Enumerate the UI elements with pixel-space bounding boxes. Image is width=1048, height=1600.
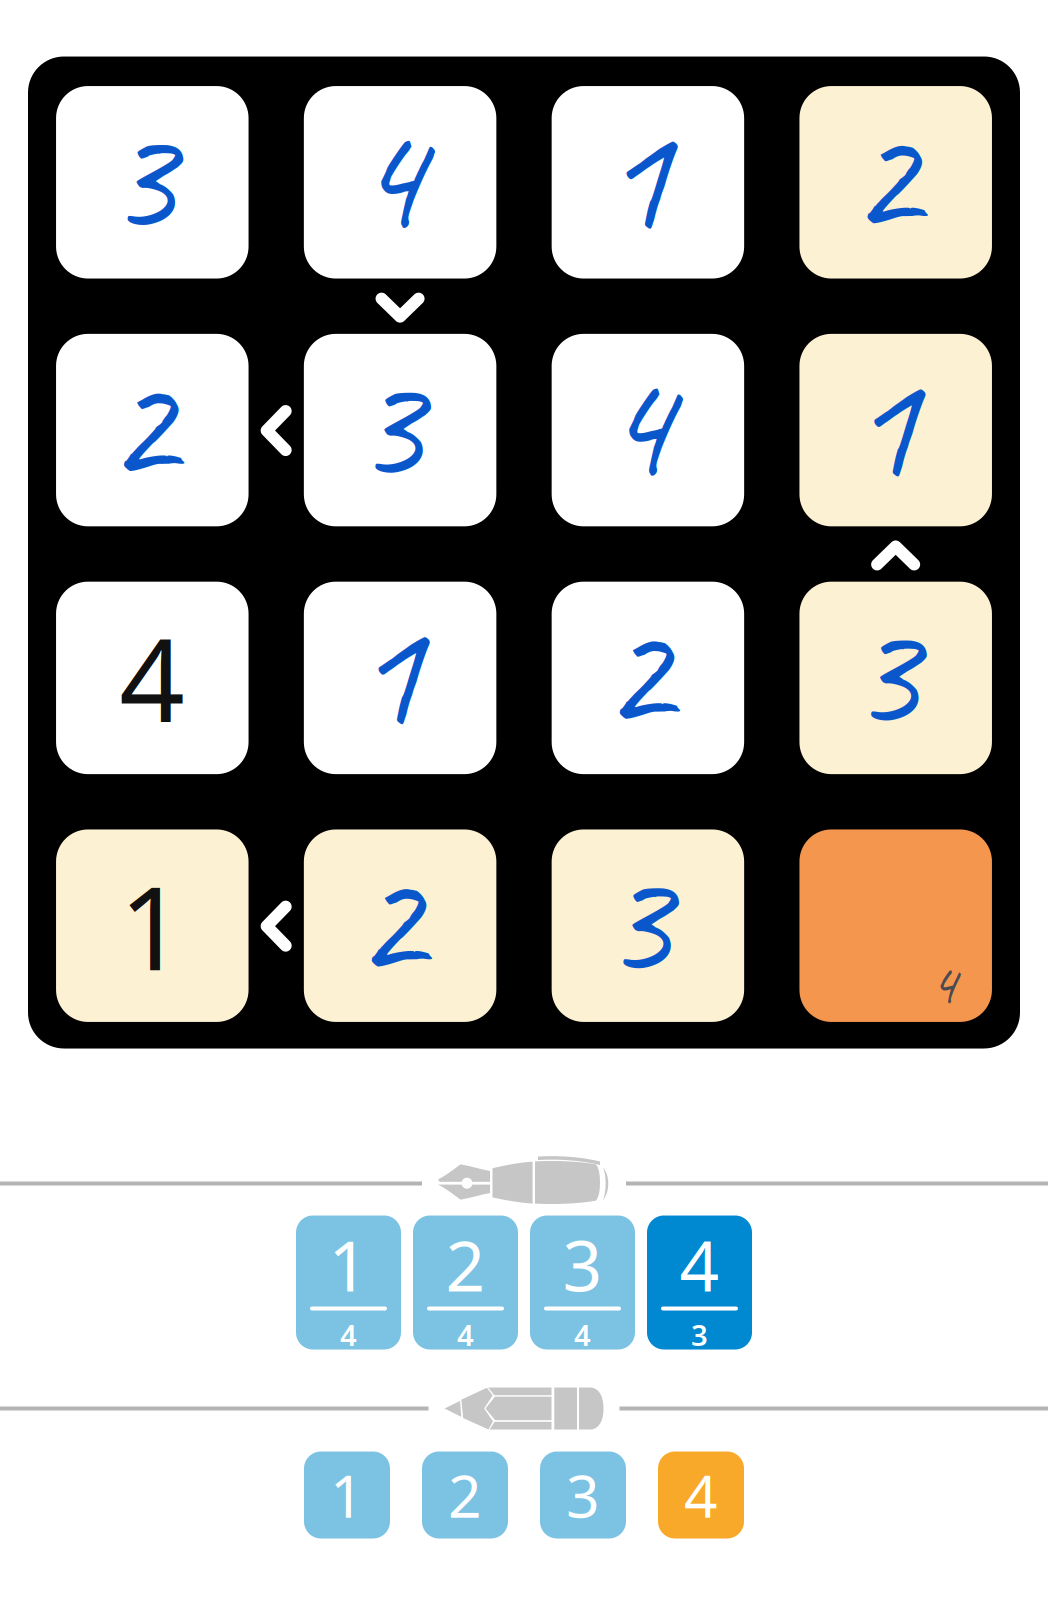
button[interactable]: 2	[304, 829, 496, 1022]
staticText: 2	[445, 1218, 485, 1311]
staticText: 3	[566, 1456, 600, 1534]
staticText: 1	[119, 850, 185, 1002]
staticText: 4	[679, 1218, 719, 1311]
button[interactable]: 1	[304, 582, 496, 774]
staticText: 4	[574, 1315, 591, 1354]
staticText: 2	[448, 1456, 482, 1534]
button[interactable]: 4	[552, 334, 744, 526]
button[interactable]: 4	[658, 1451, 744, 1538]
button[interactable]: 2	[422, 1451, 508, 1538]
staticText: 4	[457, 1315, 474, 1354]
button[interactable]: 3	[799, 582, 992, 774]
button[interactable]: 4	[647, 1215, 752, 1349]
staticText: 1	[601, 78, 671, 273]
staticText: 4	[353, 78, 423, 273]
button[interactable]: 3	[540, 1451, 626, 1538]
staticText: 4	[119, 602, 185, 754]
button[interactable]: 1	[552, 86, 744, 279]
staticText: 3	[562, 1218, 602, 1311]
staticText: 2	[105, 326, 175, 521]
button[interactable]: 2	[413, 1215, 518, 1349]
staticText: 3	[601, 822, 671, 1017]
staticText: 2	[849, 78, 919, 273]
button[interactable]: 2	[56, 334, 249, 526]
staticText: 1	[328, 1218, 368, 1311]
staticText: 1	[330, 1456, 364, 1534]
button[interactable]: 3	[56, 86, 249, 279]
staticText: 1	[353, 574, 423, 769]
button[interactable]: 3	[530, 1215, 635, 1349]
button[interactable]: 4	[799, 829, 992, 1022]
button[interactable]: 2	[799, 86, 992, 279]
staticText: 3	[691, 1315, 708, 1354]
staticText: 4	[684, 1456, 718, 1534]
staticText: 4	[340, 1315, 357, 1354]
button[interactable]: 4	[56, 582, 249, 774]
button[interactable]: 1	[304, 1451, 390, 1538]
staticText: 2	[601, 574, 671, 769]
staticText: 4	[601, 326, 671, 521]
staticText: 4	[930, 947, 956, 1021]
button[interactable]: 1	[799, 334, 992, 526]
button[interactable]: 1	[56, 829, 249, 1022]
button[interactable]: 1	[296, 1215, 401, 1349]
button[interactable]: 3	[304, 334, 496, 526]
staticText: 3	[353, 326, 423, 521]
staticText: 1	[849, 326, 919, 521]
staticText: 2	[353, 822, 423, 1017]
button[interactable]: 3	[552, 829, 744, 1022]
staticText: 3	[105, 78, 175, 273]
button[interactable]: 2	[552, 582, 744, 774]
button[interactable]: 4	[304, 86, 496, 279]
staticText: 3	[849, 574, 919, 769]
